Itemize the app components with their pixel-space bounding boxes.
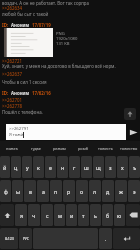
staticText: ID:: [2, 22, 9, 28]
button[interactable]: ш: [81, 156, 92, 178]
staticText: >>262721: [2, 58, 23, 64]
button[interactable]: й: [0, 156, 10, 178]
button[interactable]: Enter: [113, 228, 140, 249]
button[interactable]: и: [66, 204, 77, 226]
staticText: р: [67, 188, 71, 195]
staticText: т: [82, 212, 85, 219]
button[interactable]: ъ: [129, 156, 140, 178]
button[interactable]: а: [37, 180, 49, 202]
button[interactable]: ц: [11, 156, 21, 178]
button[interactable]: ч: [28, 204, 40, 226]
button[interactable]: т: [78, 204, 89, 226]
staticText: тожество: [120, 146, 138, 151]
staticText: >>262701: [2, 97, 23, 103]
staticText: п: [54, 188, 58, 195]
staticText: 17/62/16: [32, 90, 51, 96]
staticText: Я тожй: [9, 131, 24, 137]
staticText: л: [93, 188, 97, 195]
staticText: с: [46, 212, 49, 219]
button[interactable]: режим: [48, 141, 71, 155]
button[interactable]: е: [45, 156, 56, 178]
button[interactable]: н: [57, 156, 68, 178]
staticText: воздач. А он не работает. Вот так сорпра: [2, 0, 89, 6]
button[interactable]: п: [50, 180, 62, 202]
button[interactable]: тожество: [117, 141, 140, 155]
button[interactable]: Backspace: [126, 204, 140, 226]
button[interactable]: з: [105, 156, 116, 178]
staticText: >>262778: [2, 103, 23, 109]
button[interactable]: ю: [114, 204, 125, 226]
button[interactable]: б: [102, 204, 113, 226]
button[interactable]: Send: [126, 124, 140, 140]
staticText: &123: [5, 236, 14, 241]
staticText: 17/07/19: [32, 22, 51, 28]
button[interactable]: ы: [12, 180, 23, 202]
staticText: РУС: [23, 237, 29, 241]
staticText: ч: [32, 212, 36, 219]
button[interactable]: р: [63, 180, 75, 202]
button[interactable]: ромб: [71, 141, 94, 155]
button[interactable]: Shift: [0, 204, 14, 226]
staticText: PNG: [56, 31, 65, 37]
staticText: Пошёл с телефона.: [2, 109, 43, 115]
staticText: й: [3, 164, 7, 171]
button[interactable]: к: [33, 156, 44, 178]
staticText: Чтобы в сил 1 сессия: [2, 79, 47, 85]
staticText: ID:: [2, 90, 9, 96]
button[interactable]: .: [99, 228, 112, 249]
staticText: режим: [53, 146, 66, 151]
button[interactable]: о: [76, 180, 88, 202]
staticText: ромб: [78, 146, 88, 151]
button[interactable]: я: [15, 204, 27, 226]
button[interactable]: гудке: [24, 141, 48, 155]
button[interactable]: щ: [93, 156, 104, 178]
staticText: н: [61, 164, 65, 171]
button[interactable]: э: [128, 180, 140, 202]
button[interactable]: у: [22, 156, 32, 178]
button[interactable]: м: [54, 204, 65, 226]
staticText: >>262634: [2, 5, 23, 11]
staticText: Хуй, знает, у меня на досогово в блышдег…: [2, 63, 116, 69]
staticText: э: [133, 188, 136, 195]
button[interactable]: ж: [115, 180, 127, 202]
button[interactable]: ножек: [0, 141, 24, 155]
staticText: м: [58, 212, 62, 219]
button[interactable]: л: [89, 180, 101, 202]
staticText: ы: [16, 188, 20, 195]
staticText: 131 KB: [56, 41, 70, 47]
staticText: >>262637: [2, 71, 23, 77]
button[interactable]: д: [102, 180, 114, 202]
button[interactable]: ф: [0, 180, 11, 202]
staticText: д: [106, 188, 110, 195]
staticText: ю: [117, 212, 122, 219]
button[interactable]: >>262791: [6, 124, 126, 140]
staticText: з: [109, 164, 112, 171]
staticText: ъ: [133, 164, 137, 171]
staticText: Аноним: [11, 22, 30, 28]
staticText: г: [73, 164, 76, 171]
staticText: гудке: [31, 146, 41, 151]
button[interactable]: РУС: [19, 228, 32, 249]
staticText: .: [105, 235, 107, 242]
button[interactable]: г: [69, 156, 80, 178]
staticText: ц: [14, 164, 18, 171]
button[interactable]: Scroll to top: [124, 108, 136, 120]
staticText: ш: [84, 164, 89, 171]
button[interactable]: &123: [0, 228, 18, 249]
staticText: я: [20, 212, 23, 219]
button[interactable]: с: [41, 204, 53, 226]
staticText: ножек: [6, 146, 18, 151]
button[interactable]: тожесть: [94, 141, 117, 155]
button[interactable]: в: [24, 180, 36, 202]
staticText: щ: [96, 164, 101, 171]
staticText: ф: [4, 188, 8, 195]
button[interactable]: Attached image: [4, 28, 53, 57]
staticText: х: [121, 164, 124, 171]
button[interactable]: ь: [90, 204, 101, 226]
staticText: о: [80, 188, 84, 195]
button[interactable]: х: [117, 156, 128, 178]
staticText: ь: [94, 212, 97, 219]
staticText: >>262791: [9, 125, 29, 131]
staticText: Аноним: [11, 90, 30, 96]
